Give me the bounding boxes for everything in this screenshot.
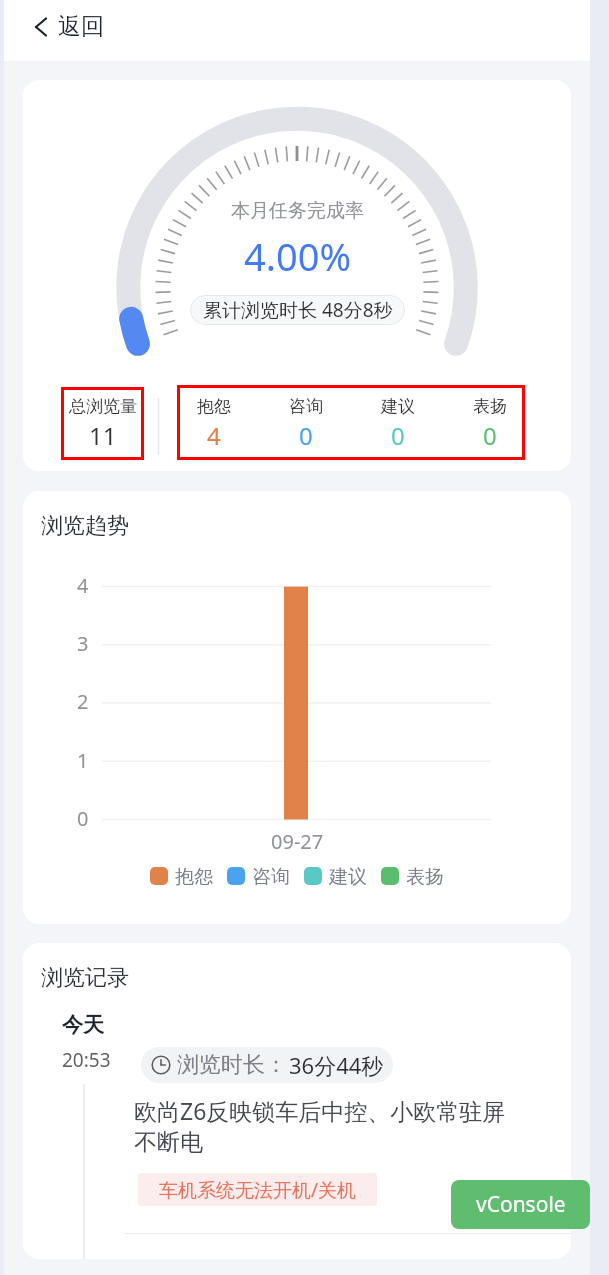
staticText: 表扬 — [473, 396, 507, 417]
staticText: 4 — [207, 419, 221, 452]
staticText: 表扬 — [406, 865, 444, 887]
staticText: 0 — [483, 419, 497, 452]
button[interactable]: vConsole — [451, 1180, 590, 1229]
staticText: 总浏览量 — [69, 396, 137, 417]
staticText: 1 — [77, 747, 89, 774]
button[interactable]: 抱怨 — [150, 865, 213, 887]
staticText: 抱怨 — [197, 396, 231, 417]
button[interactable]: 建议 — [352, 385, 444, 460]
button[interactable]: 咨询 — [260, 385, 352, 460]
staticText: 2 — [77, 688, 89, 715]
button[interactable]: 抱怨 — [168, 385, 260, 460]
button[interactable]: 车机系统无法开机/关机 — [138, 1173, 377, 1206]
button[interactable]: Back — [4, 0, 590, 61]
staticText: 20:53 — [62, 1047, 111, 1073]
other: Back — [32, 15, 48, 39]
staticText: 建议 — [329, 865, 367, 887]
staticText: 36分44秒 — [289, 1050, 384, 1080]
button[interactable]: 建议 — [304, 865, 367, 887]
staticText: 0 — [391, 419, 405, 452]
staticText: 返回 — [58, 12, 104, 41]
button[interactable]: 咨询 — [227, 865, 290, 887]
staticText: 4.00% — [244, 230, 351, 282]
button[interactable]: 累计浏览时长 48分8秒 — [190, 295, 405, 325]
staticText: 浏览记录 — [41, 964, 129, 992]
staticText: 09-27 — [271, 828, 324, 855]
staticText: vConsole — [476, 1190, 566, 1219]
staticText: 车机系统无法开机/关机 — [159, 1177, 357, 1203]
staticText: 咨询 — [252, 865, 290, 887]
staticText: 咨询 — [289, 396, 323, 417]
button[interactable]: 表扬 — [444, 385, 536, 460]
staticText: 今天 — [62, 1012, 104, 1038]
staticText: 4 — [77, 572, 89, 599]
staticText: 0 — [299, 419, 313, 452]
staticText: 累计浏览时长 48分8秒 — [203, 297, 393, 323]
staticText: 建议 — [381, 396, 415, 417]
staticText: 0 — [77, 805, 89, 832]
staticText: 抱怨 — [175, 865, 213, 887]
button[interactable]: 总浏览量 — [61, 387, 144, 460]
button[interactable]: 表扬 — [381, 865, 444, 887]
button[interactable]: 浏览时长： — [141, 1047, 393, 1083]
staticText: 11 — [89, 419, 117, 452]
staticText: 浏览趋势 — [41, 512, 129, 540]
staticText: 欧尚Z6反映锁车后中控、小欧常驻屏不断电 — [134, 1095, 512, 1157]
staticText: 浏览时长： — [177, 1051, 287, 1079]
button[interactable] — [177, 385, 525, 460]
staticText: 3 — [77, 630, 89, 657]
staticText: 本月任务完成率 — [231, 199, 364, 223]
